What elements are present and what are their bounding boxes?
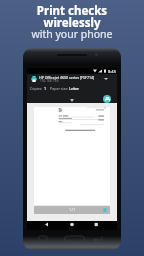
staticText: Copies:: [30, 86, 43, 91]
button[interactable]: Select printer: [104, 78, 108, 80]
other: Printer: [31, 76, 37, 82]
staticText: Paper size:: [50, 86, 69, 91]
staticText: 8:45: [108, 69, 116, 74]
staticText: wirelessly: [0, 15, 144, 31]
staticText: 1: [44, 86, 47, 91]
staticText: with your phone: [0, 27, 144, 41]
button[interactable]: 1/1: [34, 206, 110, 214]
staticText: HP Officejet 4650 series [F5F714]: [39, 75, 95, 80]
button[interactable]: Print: [103, 95, 111, 103]
staticText: 1/1: [69, 207, 76, 213]
staticText: 192.168.1.66: [40, 79, 59, 83]
staticText: Letter: [69, 86, 80, 91]
staticText: Print checks: [0, 3, 144, 19]
